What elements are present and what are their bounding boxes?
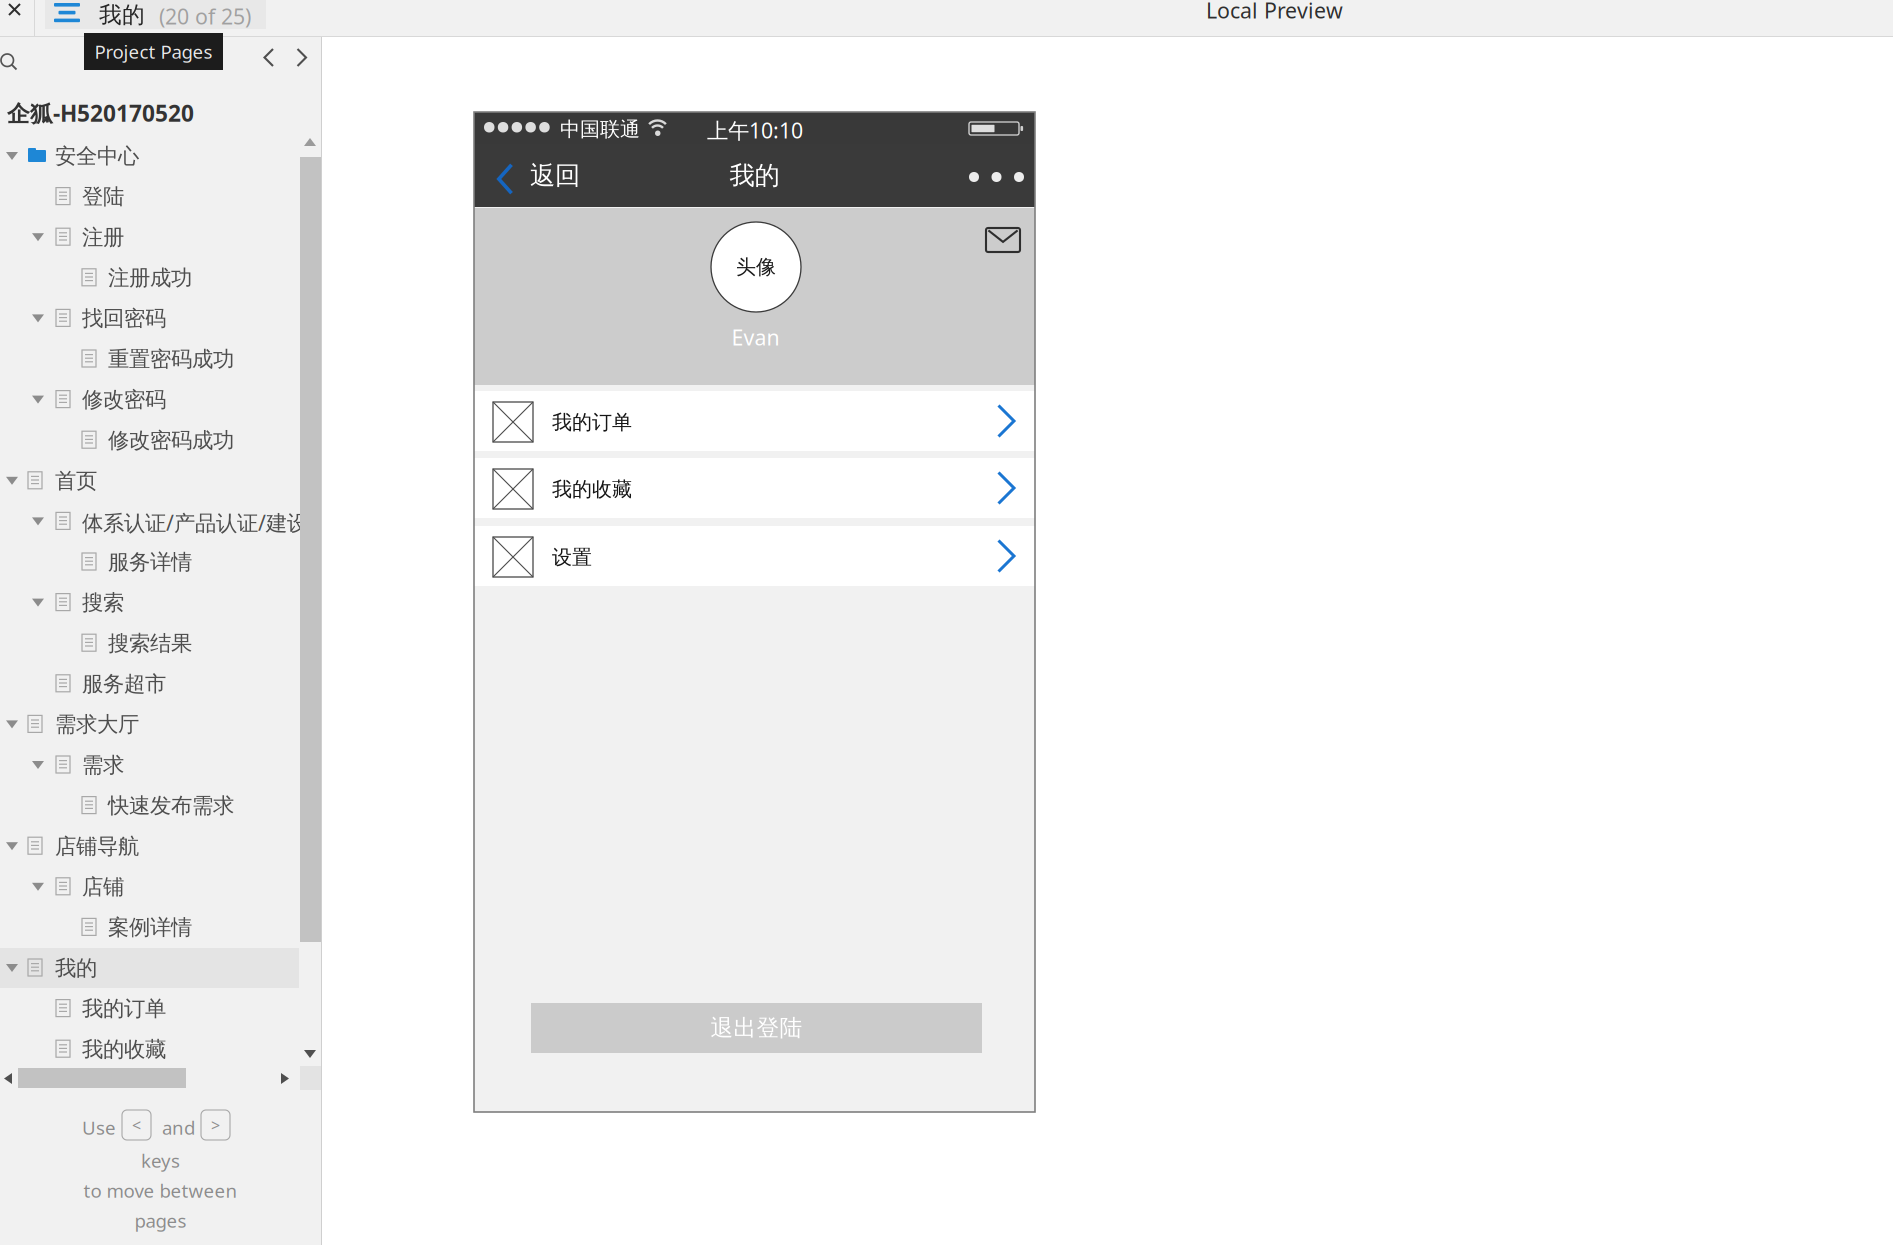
- staticText: <: [132, 1114, 141, 1136]
- button[interactable]: 登陆: [0, 177, 321, 217]
- staticText: 搜索: [82, 590, 124, 616]
- staticText: 企狐-H520170520: [7, 98, 194, 128]
- button[interactable]: 我的订单: [0, 989, 321, 1029]
- button[interactable]: 修改密码成功: [0, 420, 321, 460]
- staticText: 修改密码成功: [108, 427, 234, 453]
- button[interactable]: 服务详情: [0, 542, 321, 582]
- button[interactable]: 体系认证/产品认证/建设: [0, 501, 321, 541]
- button[interactable]: 案例详情: [0, 907, 321, 947]
- staticText: 服务详情: [108, 549, 192, 575]
- staticText: (20 of 25): [159, 2, 251, 30]
- staticText: Project Pages: [94, 39, 212, 64]
- staticText: to move between: [83, 1178, 237, 1203]
- staticText: 店铺: [82, 874, 124, 900]
- button[interactable]: 我的: [0, 948, 321, 988]
- button[interactable]: 注册: [0, 217, 321, 257]
- button[interactable]: 店铺: [0, 867, 321, 907]
- button[interactable]: Next page: [292, 45, 316, 71]
- staticText: 需求大厅: [55, 711, 139, 738]
- staticText: 我的收藏: [82, 1036, 166, 1062]
- staticText: 案例详情: [108, 914, 192, 941]
- staticText: keys: [141, 1148, 180, 1173]
- staticText: 设置: [552, 545, 592, 570]
- button[interactable]: Search pages: [0, 44, 30, 76]
- staticText: >: [211, 1114, 220, 1136]
- button[interactable]: 安全中心: [0, 136, 321, 176]
- button[interactable]: 修改密码: [0, 380, 321, 420]
- staticText: 我的: [99, 1, 145, 29]
- staticText: 注册成功: [108, 265, 192, 291]
- staticText: 店铺导航: [55, 833, 139, 859]
- button[interactable]: 搜索: [0, 583, 321, 623]
- staticText: 返回: [530, 160, 580, 191]
- staticText: 注册: [82, 224, 124, 250]
- button[interactable]: 找回密码: [0, 298, 321, 338]
- staticText: Local Preview: [1206, 0, 1343, 24]
- button[interactable]: 快速发布需求: [0, 786, 321, 826]
- staticText: 我的: [55, 955, 97, 981]
- button[interactable]: Messages: [974, 216, 1024, 260]
- button[interactable]: 服务超市: [0, 664, 321, 704]
- staticText: 服务超市: [82, 671, 166, 697]
- button[interactable]: 设置: [474, 526, 1035, 586]
- staticText: 首页: [55, 468, 97, 494]
- staticText: 找回密码: [82, 305, 166, 332]
- button[interactable]: More options: [934, 144, 1034, 207]
- staticText: pages: [134, 1208, 186, 1233]
- staticText: 退出登陆: [710, 1014, 802, 1042]
- button[interactable]: 需求: [0, 745, 321, 785]
- staticText: 体系认证/产品认证/建设: [82, 508, 308, 537]
- button[interactable]: 我的订单: [474, 391, 1035, 451]
- staticText: 快速发布需求: [108, 793, 234, 819]
- staticText: 我的订单: [82, 996, 166, 1022]
- staticText: 修改密码: [82, 387, 166, 413]
- button[interactable]: 需求大厅: [0, 704, 321, 744]
- staticText: and: [162, 1115, 195, 1140]
- staticText: 重置密码成功: [108, 346, 234, 372]
- staticText: 中国联通: [560, 117, 640, 142]
- button[interactable]: 首页: [0, 461, 321, 501]
- staticText: 头像: [736, 255, 776, 279]
- button[interactable]: 退出登陆: [531, 1003, 982, 1053]
- button[interactable]: Previous page: [258, 45, 282, 71]
- staticText: 安全中心: [55, 143, 139, 169]
- staticText: 我的收藏: [552, 477, 632, 502]
- staticText: 需求: [82, 752, 124, 778]
- staticText: 登陆: [82, 184, 124, 210]
- staticText: Evan: [731, 323, 779, 351]
- button[interactable]: 返回: [474, 144, 604, 207]
- button[interactable]: 重置密码成功: [0, 339, 321, 379]
- staticText: 上午10:10: [707, 116, 803, 144]
- button[interactable]: 注册成功: [0, 258, 321, 298]
- button[interactable]: 我的: [45, 0, 266, 29]
- button[interactable]: 我的收藏: [474, 458, 1035, 518]
- button[interactable]: 我的收藏: [0, 1029, 321, 1069]
- button[interactable]: Close: [0, 0, 34, 30]
- staticText: 我的订单: [552, 410, 632, 435]
- button[interactable]: 搜索结果: [0, 623, 321, 663]
- staticText: 我的: [729, 160, 779, 191]
- staticText: 搜索结果: [108, 630, 192, 656]
- staticText: Use: [82, 1115, 116, 1140]
- button[interactable]: 店铺导航: [0, 826, 321, 866]
